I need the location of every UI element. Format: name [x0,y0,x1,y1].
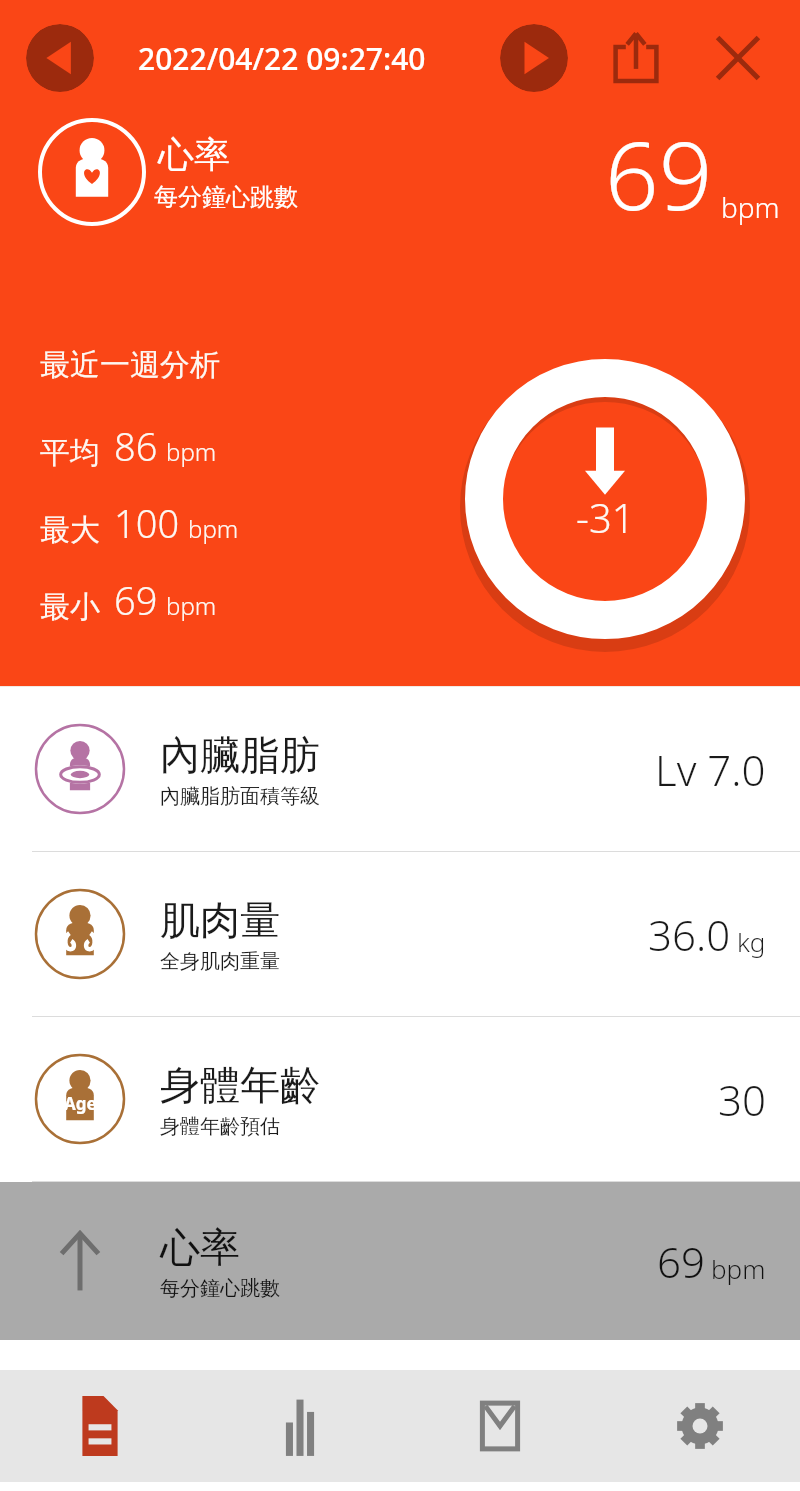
other: Collapse [34,1215,126,1307]
staticText: 身體年齡 [160,1060,320,1110]
button[interactable]: Statistics [200,1370,400,1482]
staticText: 內臟脂肪 [160,730,320,780]
staticText: 30 [718,1071,766,1128]
button[interactable]: Close [704,24,772,92]
staticText: 每分鐘心跳數 [160,1276,280,1301]
button[interactable]: 內臟脂肪 [0,687,800,851]
staticText: -31 [576,490,635,544]
staticText: 2022/04/22 09:27:40 [138,38,426,79]
staticText: 69 [114,574,158,626]
button[interactable]: Mail [400,1370,600,1482]
staticText: 最小 [40,588,100,626]
staticText: 86 [114,420,158,472]
staticText: 肌肉量 [160,895,280,945]
staticText: 69 [657,1233,705,1290]
button[interactable]: Report [0,1370,200,1482]
staticText: kg [737,924,766,959]
staticText: 69 [605,110,713,238]
staticText: 身體年齡預估 [160,1114,280,1139]
staticText: 100 [114,497,180,549]
staticText: Age [64,1092,97,1115]
staticText: 最大 [40,511,100,549]
staticText: 全身肌肉重量 [160,949,280,974]
staticText: bpm [188,512,239,545]
staticText: 平均 [40,434,100,472]
staticText: 心率 [160,1222,240,1272]
button[interactable]: Previous [26,24,94,92]
button[interactable]: Age [0,1017,800,1181]
button[interactable]: Play [500,24,568,92]
staticText: bpm [166,589,217,622]
button[interactable]: 肌肉量 [0,852,800,1016]
staticText: bpm [166,435,217,468]
staticText: 每分鐘心跳數 [154,182,298,212]
staticText: bpm [721,188,780,226]
staticText: bpm [711,1251,766,1286]
staticText: Lv 7.0 [655,741,766,798]
button[interactable]: Collapse [0,1182,800,1340]
staticText: 36.0 [648,906,731,963]
staticText: 心率 [158,132,230,177]
button[interactable]: Settings [600,1370,800,1482]
staticText: 最近一週分析 [40,346,220,384]
staticText: 內臟脂肪面積等級 [160,784,320,809]
button[interactable]: Share [602,24,670,92]
